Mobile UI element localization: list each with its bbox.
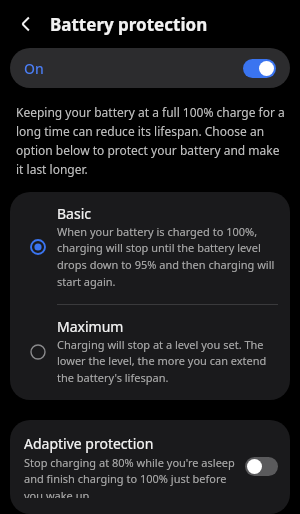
staticText: Adaptive protection bbox=[24, 434, 154, 453]
button[interactable]: Off bbox=[245, 457, 278, 476]
button[interactable]: On bbox=[10, 48, 290, 88]
staticText: Charging will stop at a level you set. T… bbox=[57, 337, 278, 386]
button[interactable]: Adaptive protection bbox=[10, 420, 290, 514]
staticText: When your battery is charged to 100%, ch… bbox=[57, 224, 278, 290]
staticText: Battery protection bbox=[50, 13, 208, 36]
button[interactable]: Back bbox=[8, 6, 44, 42]
staticText: Stop charging at 80% while you're asleep… bbox=[24, 455, 235, 498]
staticText: Keeping your battery at a full 100% char… bbox=[16, 104, 286, 177]
button[interactable]: Maximum bbox=[10, 305, 290, 400]
staticText: Basic bbox=[57, 204, 91, 223]
staticText: On bbox=[24, 59, 44, 78]
button[interactable]: On bbox=[243, 59, 276, 78]
staticText: Maximum bbox=[57, 317, 124, 336]
button[interactable]: Basic bbox=[10, 192, 290, 304]
